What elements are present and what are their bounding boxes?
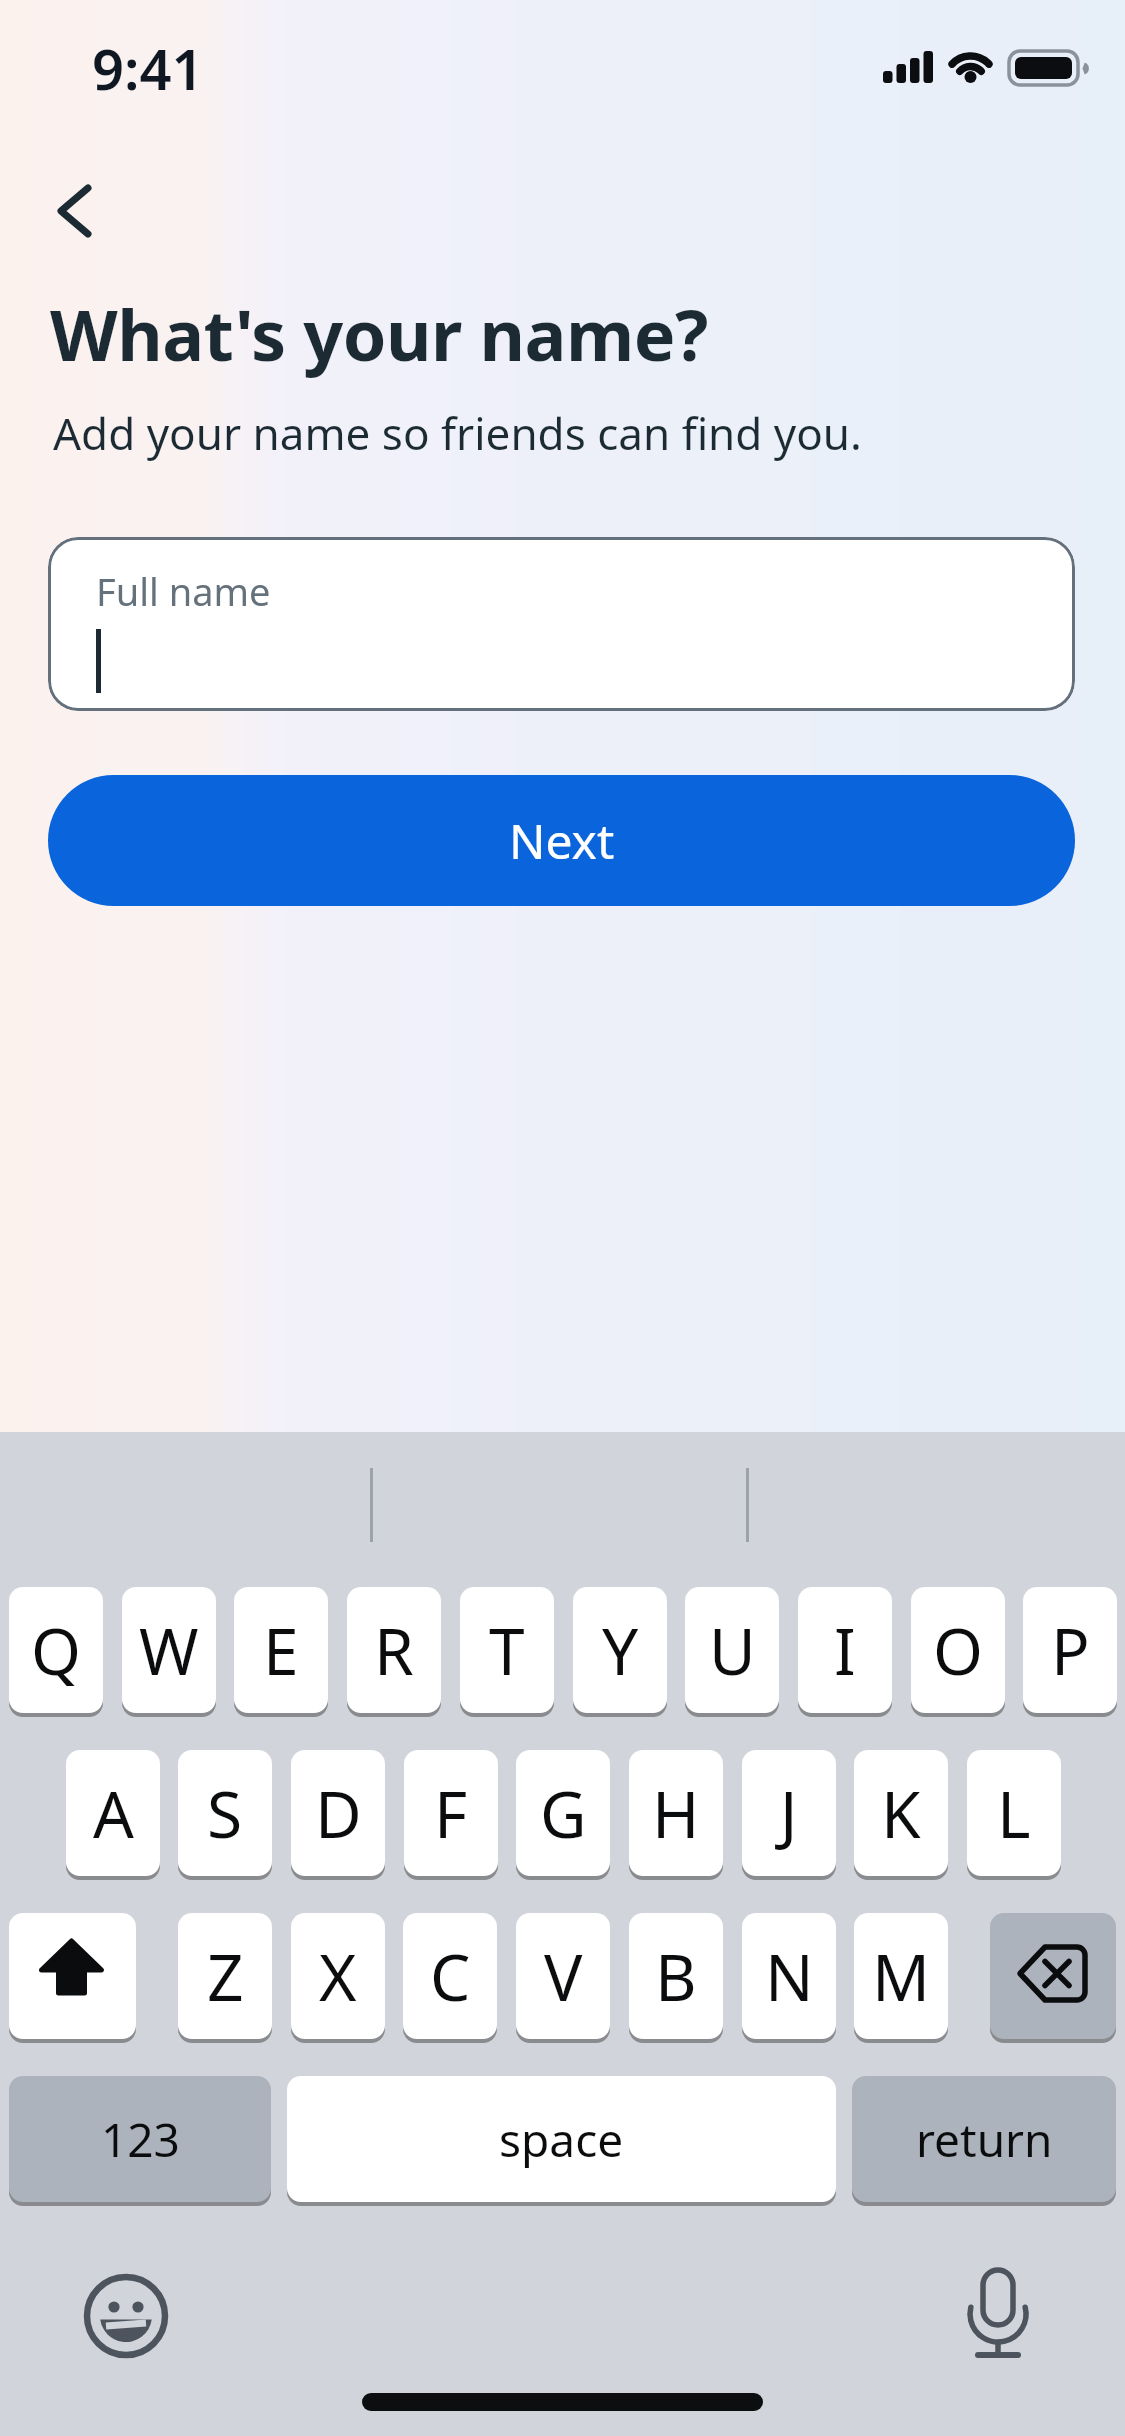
button[interactable]: N xyxy=(742,1913,836,2043)
button[interactable]: 123 xyxy=(9,2076,271,2206)
staticText: F xyxy=(434,1770,468,1857)
button[interactable]: Y xyxy=(573,1587,667,1717)
staticText: I xyxy=(834,1607,856,1694)
button[interactable]: R xyxy=(347,1587,441,1717)
staticText: O xyxy=(933,1607,983,1694)
staticText: Add your name so friends can find you. xyxy=(53,403,862,463)
staticText: T xyxy=(489,1607,525,1694)
staticText: 123 xyxy=(101,2108,180,2171)
button[interactable] xyxy=(9,1913,136,2043)
button[interactable]: Q xyxy=(9,1587,103,1717)
button[interactable]: U xyxy=(685,1587,779,1717)
button[interactable]: S xyxy=(178,1750,272,1880)
staticText: Z xyxy=(207,1933,244,2020)
staticText: X xyxy=(319,1933,357,2020)
button[interactable]: M xyxy=(854,1913,948,2043)
button[interactable]: I xyxy=(798,1587,892,1717)
staticText: return xyxy=(916,2108,1053,2171)
staticText: Q xyxy=(31,1607,81,1694)
button[interactable]: return xyxy=(852,2076,1116,2206)
staticText: N xyxy=(765,1933,814,2020)
staticText: Y xyxy=(602,1607,639,1694)
staticText: R xyxy=(374,1607,414,1694)
staticText: P xyxy=(1051,1607,1090,1694)
button[interactable]: F xyxy=(404,1750,498,1880)
button[interactable]: D xyxy=(291,1750,385,1880)
staticText: W xyxy=(139,1607,199,1694)
staticText: E xyxy=(263,1607,299,1694)
staticText: B xyxy=(655,1933,697,2020)
staticText: U xyxy=(709,1607,756,1694)
button[interactable] xyxy=(944,2260,1052,2368)
staticText: space xyxy=(499,2108,624,2171)
button[interactable]: C xyxy=(403,1913,497,2043)
button[interactable]: E xyxy=(234,1587,328,1717)
button[interactable] xyxy=(36,168,120,252)
staticText: 9:41 xyxy=(92,30,204,106)
button[interactable]: V xyxy=(516,1913,610,2043)
button[interactable]: H xyxy=(629,1750,723,1880)
button[interactable] xyxy=(82,2272,170,2360)
staticText: Full name xyxy=(96,565,271,617)
button[interactable]: L xyxy=(967,1750,1061,1880)
button[interactable]: O xyxy=(911,1587,1005,1717)
button[interactable]: J xyxy=(742,1750,836,1880)
staticText: M xyxy=(872,1933,931,2020)
button[interactable]: Full name xyxy=(48,537,1075,711)
button[interactable]: B xyxy=(629,1913,723,2043)
button[interactable]: K xyxy=(854,1750,948,1880)
button[interactable]: space xyxy=(287,2076,836,2206)
staticText: K xyxy=(881,1770,921,1857)
staticText: A xyxy=(93,1770,134,1857)
button[interactable]: Z xyxy=(178,1913,272,2043)
button[interactable]: T xyxy=(460,1587,554,1717)
button[interactable]: W xyxy=(122,1587,216,1717)
button[interactable]: A xyxy=(66,1750,160,1880)
button[interactable]: P xyxy=(1023,1587,1117,1717)
button[interactable] xyxy=(990,1913,1116,2043)
staticText: G xyxy=(540,1770,587,1857)
button[interactable]: X xyxy=(291,1913,385,2043)
staticText: V xyxy=(544,1933,583,2020)
staticText: L xyxy=(997,1770,1031,1857)
button[interactable]: Next xyxy=(48,775,1075,906)
staticText: J xyxy=(780,1770,798,1857)
button[interactable]: G xyxy=(516,1750,610,1880)
staticText: What's your name? xyxy=(50,286,708,381)
staticText: D xyxy=(315,1770,362,1857)
staticText: H xyxy=(652,1770,700,1857)
staticText: Next xyxy=(509,808,615,873)
staticText: S xyxy=(207,1770,243,1857)
staticText: C xyxy=(430,1933,471,2020)
